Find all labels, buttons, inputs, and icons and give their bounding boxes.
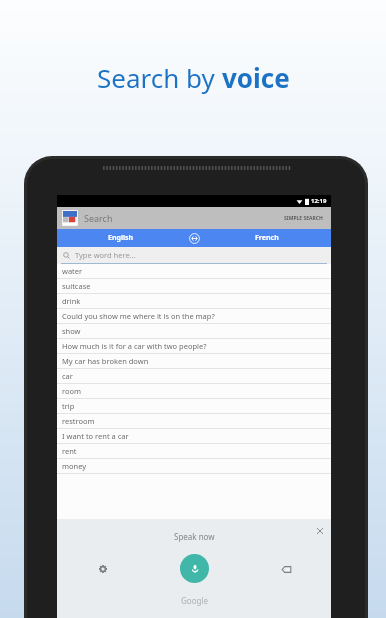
- staticText: How much is it for a car with two people…: [62, 341, 207, 351]
- staticText: Google: [181, 595, 208, 606]
- button[interactable]: English: [57, 229, 185, 247]
- staticText: Type word here...: [75, 250, 136, 260]
- button[interactable]: App icon: [62, 210, 78, 226]
- button[interactable]: car: [57, 369, 331, 383]
- button[interactable]: I want to rent a car: [57, 429, 331, 443]
- button[interactable]: Swap languages: [185, 229, 203, 247]
- button[interactable]: Settings: [93, 559, 113, 579]
- staticText: 12:19: [311, 197, 327, 205]
- staticText: suitcase: [62, 281, 91, 291]
- button[interactable]: My car has broken down: [57, 354, 331, 368]
- staticText: English: [108, 233, 134, 243]
- button[interactable]: show: [57, 324, 331, 338]
- button[interactable]: Could you show me where it is on the map…: [57, 309, 331, 323]
- button[interactable]: SIMPLE SEARCH: [281, 212, 326, 225]
- staticText: room: [62, 386, 82, 396]
- staticText: car: [62, 371, 73, 381]
- button[interactable]: trip: [57, 399, 331, 413]
- staticText: restroom: [62, 416, 95, 426]
- button[interactable]: Type word here...: [57, 247, 331, 263]
- button[interactable]: drink: [57, 294, 331, 308]
- staticText: French: [255, 233, 279, 243]
- button[interactable]: restroom: [57, 414, 331, 428]
- button[interactable]: Close: [314, 525, 326, 537]
- button[interactable]: French: [203, 229, 331, 247]
- staticText: water: [62, 266, 83, 276]
- staticText: My car has broken down: [62, 356, 149, 366]
- button[interactable]: water: [57, 264, 331, 278]
- staticText: drink: [62, 296, 81, 306]
- staticText: trip: [62, 401, 75, 411]
- staticText: voice: [222, 60, 290, 95]
- staticText: SIMPLE SEARCH: [284, 215, 323, 222]
- staticText: Search by: [97, 60, 222, 95]
- button[interactable]: rent: [57, 444, 331, 458]
- staticText: Could you show me where it is on the map…: [62, 311, 215, 321]
- button[interactable]: money: [57, 459, 331, 473]
- staticText: money: [62, 461, 87, 471]
- button[interactable]: suitcase: [57, 279, 331, 293]
- staticText: I want to rent a car: [62, 431, 129, 441]
- button[interactable]: Backspace: [276, 559, 296, 579]
- staticText: Search: [84, 212, 113, 224]
- staticText: rent: [62, 446, 77, 456]
- staticText: Speak now: [174, 531, 215, 542]
- staticText: show: [62, 326, 81, 336]
- button[interactable]: Microphone: [180, 554, 209, 583]
- button[interactable]: room: [57, 384, 331, 398]
- button[interactable]: How much is it for a car with two people…: [57, 339, 331, 353]
